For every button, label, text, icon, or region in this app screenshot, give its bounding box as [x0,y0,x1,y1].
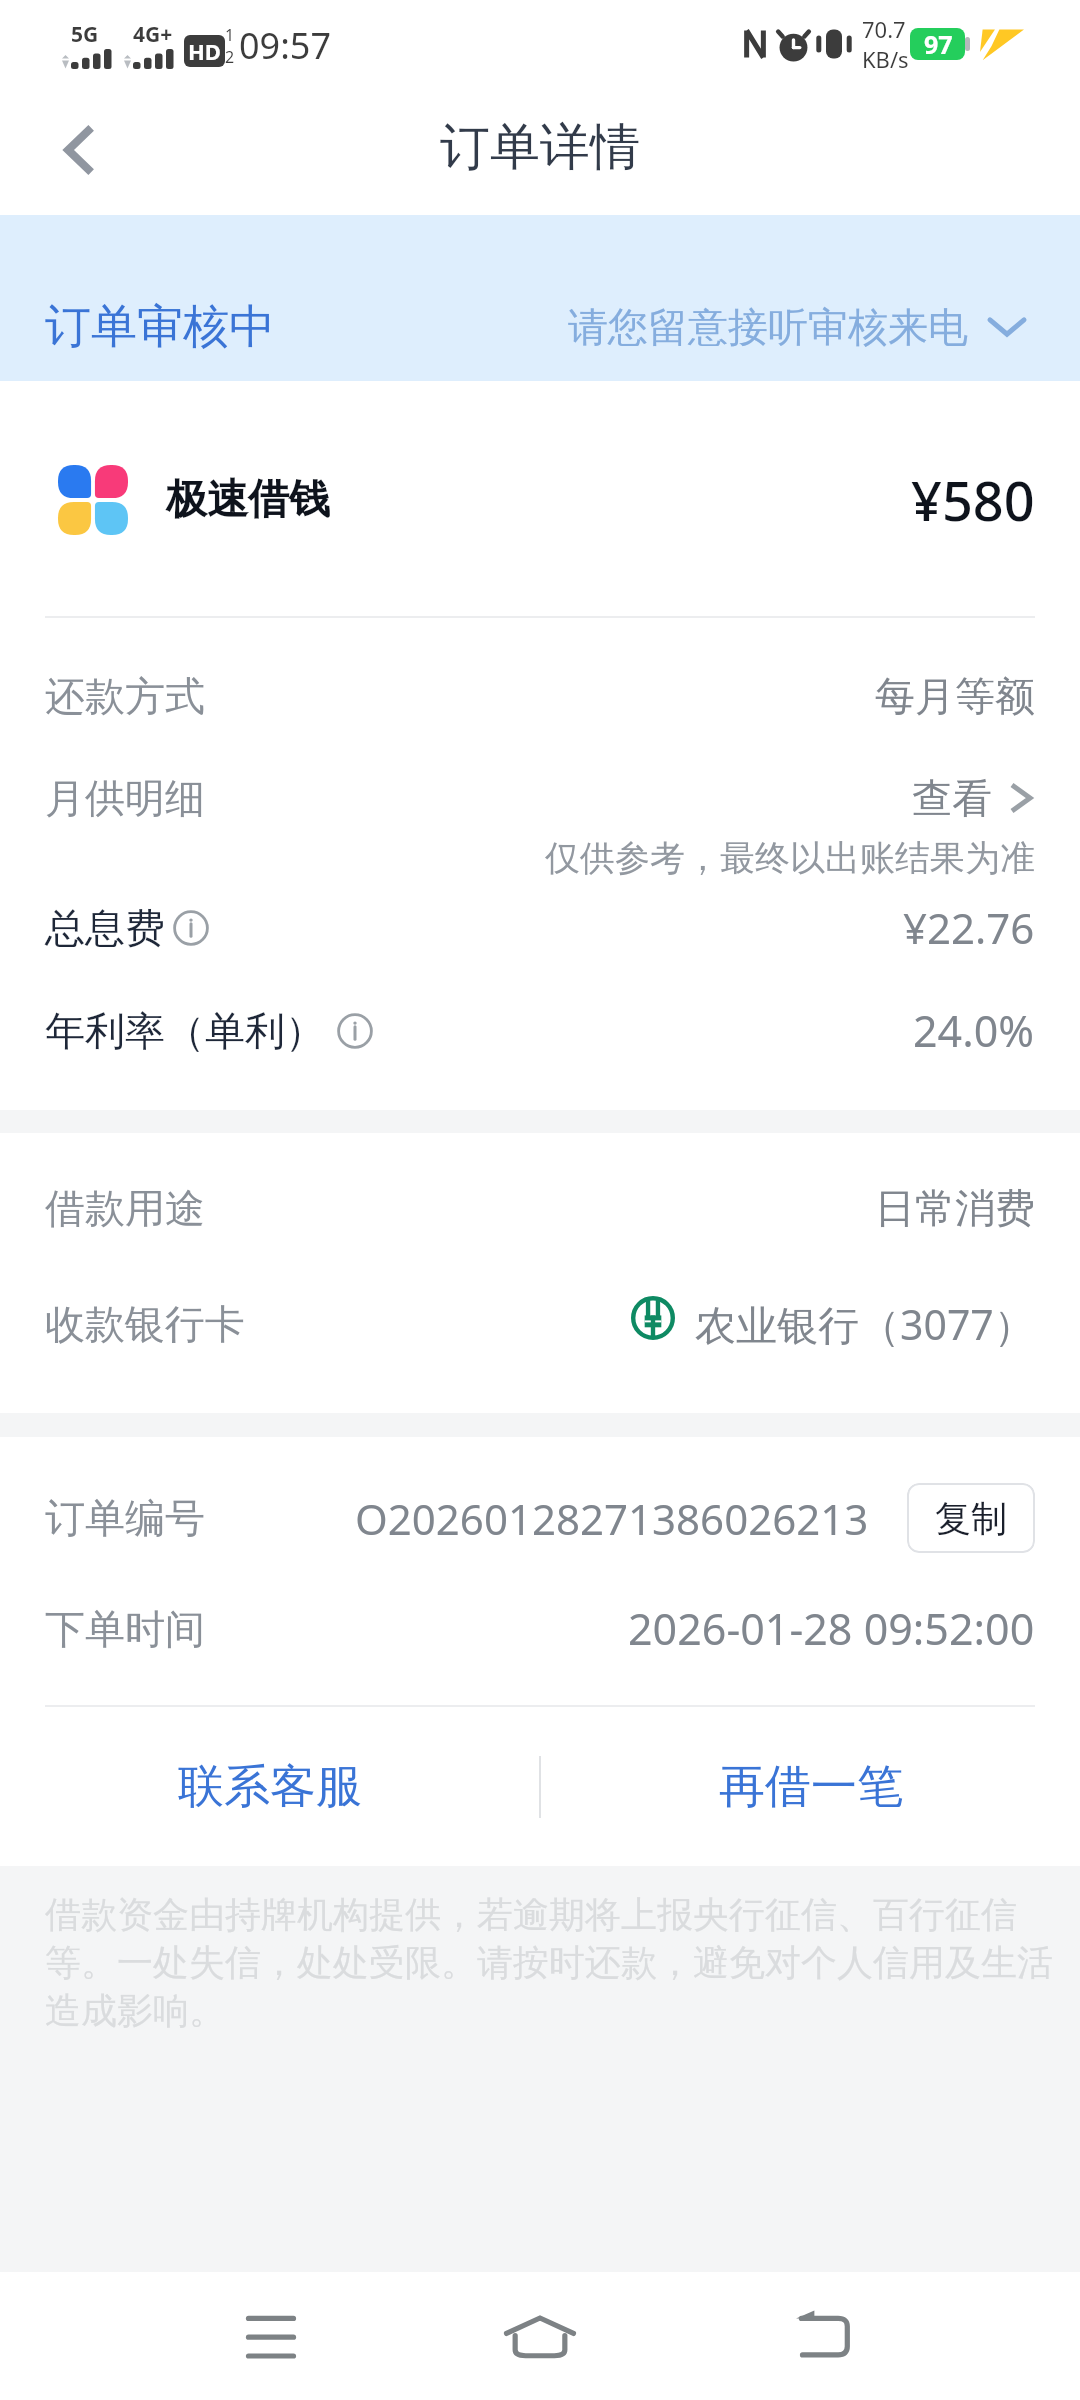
button[interactable]: 订单审核中 [0,215,1080,381]
staticText: 97 [924,27,953,61]
staticText: 复制 [935,1496,1007,1541]
button[interactable]: 收款银行卡 [45,1296,1035,1352]
staticText: 24.0% [913,1001,1035,1060]
staticText: 4G+ [133,20,173,49]
staticText: KB/s [862,44,909,74]
button[interactable]: Home [450,2272,630,2400]
staticText: O20260128271386026213 [355,1490,869,1547]
staticText: 农业银行（3077） [695,1296,1035,1352]
staticText: 订单详情 [440,116,640,179]
staticText: 总息费 [45,903,165,953]
staticText: 查看 [912,773,992,823]
staticText: 1 [225,24,235,46]
button[interactable]: Recent apps [181,2272,361,2400]
button[interactable]: 再借一笔 [541,1707,1080,1867]
staticText: 联系客服 [178,1758,362,1816]
button[interactable]: Back [4,92,154,207]
staticText: 2026-01-28 09:52:00 [628,1599,1035,1658]
staticText: 借款用途 [45,1183,205,1233]
staticText: 09:57 [239,21,332,70]
staticText: ¥580 [911,463,1035,537]
staticText: 订单审核中 [45,298,275,356]
staticText: 订单编号 [45,1493,205,1543]
staticText: 收款银行卡 [45,1299,245,1349]
staticText: 2 [225,46,235,68]
staticText: 70.7 [862,14,906,44]
staticText: 仅供参考，最终以出账结果为准 [0,836,1035,880]
staticText: 下单时间 [45,1604,205,1654]
staticText: 请您留意接听审核来电 [568,302,968,352]
staticText: 日常消费 [875,1183,1035,1233]
button[interactable]: 复制 [907,1483,1035,1553]
button[interactable]: 月供明细 [45,773,1030,823]
staticText: 借款资金由持牌机构提供，若逾期将上报央行征信、百行征信等。一处失信，处处受限。请… [45,1892,1070,2034]
button[interactable]: Back [733,2272,913,2400]
staticText: HD [188,36,221,66]
staticText: 年利率（单利） [45,1006,325,1056]
staticText: 月供明细 [45,773,205,823]
staticText: 极速借钱 [166,474,330,526]
button[interactable]: 联系客服 [0,1707,539,1867]
staticText: 每月等额 [875,671,1035,721]
staticText: 5G [71,20,99,49]
staticText: ¥22.76 [903,899,1035,956]
staticText: 还款方式 [45,671,205,721]
staticText: 再借一笔 [719,1758,903,1816]
